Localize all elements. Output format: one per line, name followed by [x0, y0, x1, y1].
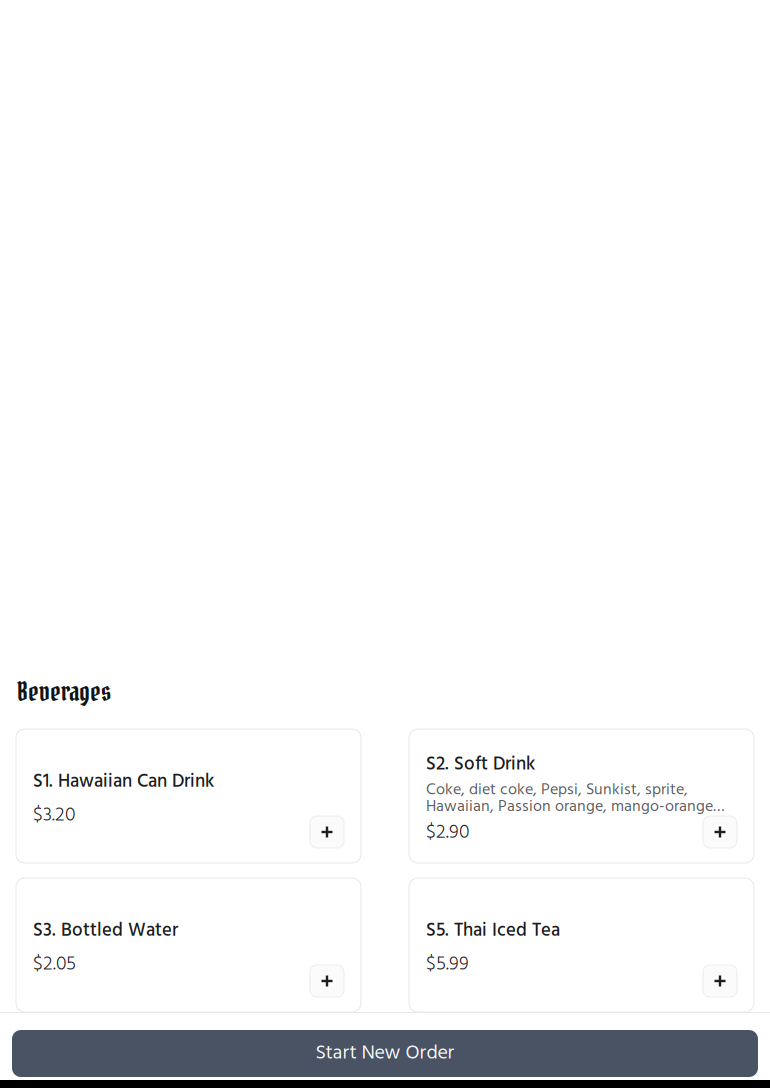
staticText: S2. Soft Drink	[426, 753, 535, 777]
staticText: $3.20	[33, 803, 75, 828]
staticText: S5. Thai Iced Tea	[426, 919, 560, 943]
staticText: S1. Hawaiian Can Drink	[33, 770, 214, 794]
staticText: Beverages	[17, 675, 111, 708]
button[interactable]: S2. Soft Drink	[409, 729, 754, 863]
staticText: $5.99	[426, 952, 469, 977]
button[interactable]: S1. Hawaiian Can Drink	[16, 729, 361, 863]
button[interactable]: Start New Order	[12, 1030, 758, 1077]
staticText: Coke, diet coke, Pepsi, Sunkist, sprite,…	[426, 782, 725, 815]
staticText: $2.90	[426, 820, 469, 845]
button[interactable]: Add item	[703, 816, 737, 848]
button[interactable]: S5. Thai Iced Tea	[409, 878, 754, 1012]
button[interactable]: S3. Bottled Water	[16, 878, 361, 1012]
button[interactable]: Add item	[310, 965, 344, 997]
staticText: $2.05	[33, 952, 76, 977]
staticText: S3. Bottled Water	[33, 919, 178, 943]
button[interactable]: Add item	[703, 965, 737, 997]
staticText: Start New Order	[315, 1037, 454, 1069]
button[interactable]: Add item	[310, 816, 344, 848]
